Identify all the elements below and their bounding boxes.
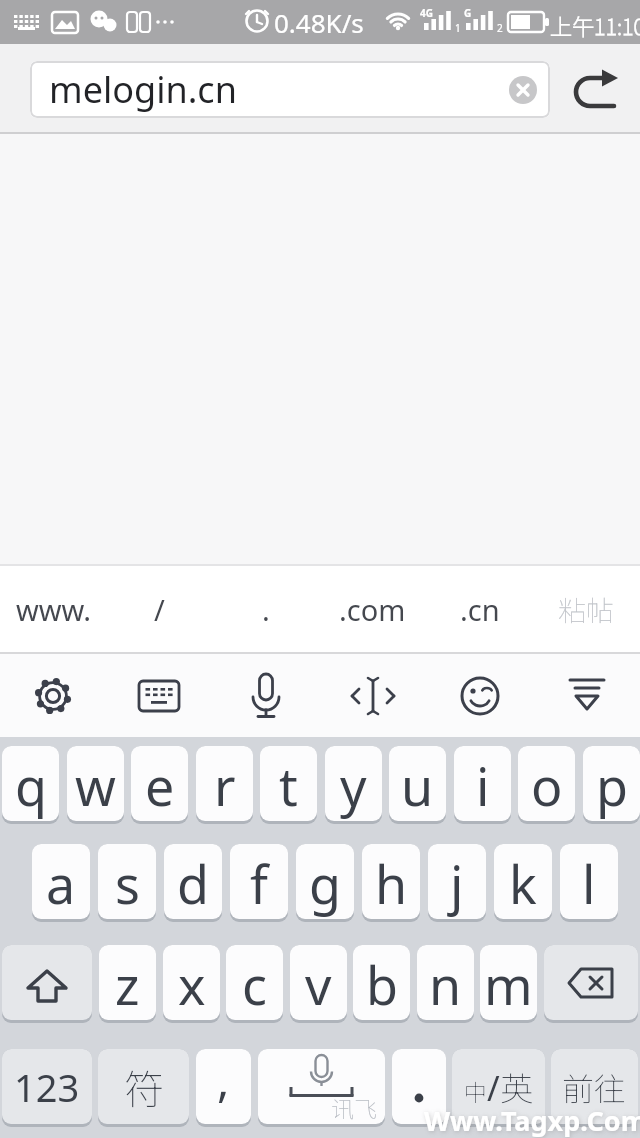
button[interactable]: w: [67, 746, 124, 821]
staticText: .: [262, 590, 270, 629]
staticText: g: [309, 848, 341, 919]
staticText: i: [476, 750, 490, 821]
staticText: k: [509, 848, 537, 919]
button[interactable]: /: [106, 566, 212, 652]
button[interactable]: [544, 945, 638, 1020]
button[interactable]: 符: [98, 1049, 189, 1124]
staticText: q: [15, 750, 47, 821]
staticText: h: [375, 848, 408, 919]
button[interactable]: j: [428, 844, 486, 919]
staticText: j: [450, 848, 464, 919]
button[interactable]: .cn: [426, 566, 533, 652]
staticText: ,: [217, 1049, 230, 1111]
button[interactable]: 中: [452, 1049, 545, 1124]
button[interactable]: m: [480, 945, 537, 1020]
staticText: 4G: [420, 6, 433, 20]
button[interactable]: k: [494, 844, 552, 919]
button[interactable]: [2, 945, 92, 1020]
staticText: z: [115, 949, 140, 1020]
button[interactable]: s: [98, 844, 156, 919]
button[interactable]: ,: [196, 1049, 251, 1124]
staticText: c: [242, 949, 267, 1020]
button[interactable]: i: [454, 746, 511, 821]
staticText: 0.48K/s: [274, 5, 364, 40]
button[interactable]: r: [196, 746, 253, 821]
staticText: Www.Tagxp.Com: [424, 1102, 640, 1138]
staticText: 中: [464, 1074, 487, 1107]
staticText: t: [279, 750, 298, 821]
staticText: 粘帖: [558, 589, 615, 630]
button[interactable]: p: [583, 746, 640, 821]
staticText: w: [75, 750, 116, 821]
button[interactable]: l: [560, 844, 618, 919]
staticText: x: [178, 949, 206, 1020]
button[interactable]: [509, 76, 537, 104]
button[interactable]: a: [32, 844, 90, 919]
staticText: 123: [14, 1061, 80, 1113]
button[interactable]: [106, 654, 212, 737]
staticText: b: [366, 949, 398, 1020]
staticText: e: [145, 750, 175, 821]
staticText: d: [177, 848, 209, 919]
button[interactable]: [319, 654, 426, 737]
button[interactable]: n: [417, 945, 474, 1020]
staticText: o: [531, 750, 563, 821]
button[interactable]: u: [389, 746, 446, 821]
staticText: s: [115, 848, 140, 919]
button[interactable]: e: [131, 746, 188, 821]
button[interactable]: o: [518, 746, 575, 821]
staticText: y: [340, 750, 367, 821]
staticText: r: [214, 750, 236, 821]
staticText: /: [487, 1065, 500, 1111]
button[interactable]: g: [296, 844, 354, 919]
button[interactable]: x: [163, 945, 220, 1020]
staticText: a: [46, 848, 76, 919]
staticText: .com: [339, 590, 406, 629]
staticText: m: [484, 949, 533, 1020]
button[interactable]: 粘帖: [533, 566, 640, 652]
staticText: /: [154, 590, 165, 629]
button[interactable]: f: [230, 844, 288, 919]
button[interactable]: [426, 654, 533, 737]
button[interactable]: [0, 654, 106, 737]
button[interactable]: .: [212, 566, 319, 652]
staticText: 2: [497, 21, 503, 35]
staticText: 前往: [562, 1064, 627, 1110]
staticText: l: [582, 848, 596, 919]
staticText: 符: [124, 1058, 164, 1116]
button[interactable]: [558, 58, 634, 120]
staticText: 讯飞: [331, 1091, 377, 1124]
staticText: .cn: [460, 590, 500, 629]
staticText: 1: [455, 21, 461, 35]
button[interactable]: z: [99, 945, 156, 1020]
button[interactable]: q: [2, 746, 59, 821]
button[interactable]: c: [226, 945, 283, 1020]
staticText: u: [401, 750, 434, 821]
staticText: www.: [16, 590, 91, 629]
staticText: f: [250, 848, 268, 919]
staticText: 英: [500, 1063, 533, 1111]
button[interactable]: melogin.cn: [30, 61, 550, 118]
button[interactable]: 123: [2, 1049, 92, 1124]
staticText: n: [429, 949, 462, 1020]
button[interactable]: 讯飞: [258, 1049, 385, 1124]
button[interactable]: y: [325, 746, 382, 821]
button[interactable]: .com: [319, 566, 426, 652]
button[interactable]: [392, 1049, 446, 1124]
staticText: v: [305, 949, 332, 1020]
button[interactable]: d: [164, 844, 222, 919]
button[interactable]: [212, 654, 319, 737]
button[interactable]: t: [260, 746, 317, 821]
button[interactable]: h: [362, 844, 420, 919]
button[interactable]: [533, 654, 640, 737]
button[interactable]: www.: [0, 566, 106, 652]
staticText: G: [464, 6, 472, 20]
button[interactable]: b: [353, 945, 410, 1020]
staticText: 上午11:10: [550, 9, 640, 41]
button[interactable]: v: [290, 945, 347, 1020]
button[interactable]: 前往: [551, 1049, 638, 1124]
staticText: p: [596, 750, 628, 821]
staticText: melogin.cn: [49, 65, 237, 114]
